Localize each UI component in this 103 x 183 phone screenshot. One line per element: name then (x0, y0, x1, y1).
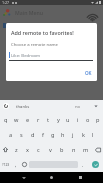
button[interactable]: c (33, 142, 44, 157)
button[interactable]: Emoji (20, 157, 29, 172)
button[interactable]: g (48, 127, 58, 142)
staticText: l (92, 131, 94, 139)
button[interactable]: Shift (0, 142, 11, 157)
button[interactable]: u (63, 112, 73, 127)
staticText: . (82, 161, 84, 168)
button[interactable]: . (78, 157, 87, 172)
button[interactable]: d (27, 127, 38, 142)
staticText: OK (85, 70, 92, 76)
staticText: d (31, 131, 35, 139)
button[interactable]: OK (80, 67, 97, 79)
button[interactable]: Home (46, 172, 57, 183)
button[interactable]: o (83, 112, 93, 127)
staticText: f (42, 131, 44, 139)
staticText: k (82, 131, 85, 139)
button[interactable]: z (11, 142, 22, 157)
staticText: x (26, 146, 29, 154)
button[interactable]: y (53, 112, 63, 127)
button[interactable]: b (56, 142, 68, 157)
button[interactable]: j (68, 127, 78, 142)
staticText: t (47, 116, 50, 124)
button[interactable]: a (5, 127, 16, 142)
staticText: q (4, 116, 8, 124)
staticText: h (61, 131, 65, 139)
button[interactable]: Back (18, 172, 29, 183)
button[interactable]: Recent apps (75, 172, 86, 183)
staticText: r (37, 116, 40, 124)
staticText: ?123 (2, 162, 10, 167)
button[interactable]: h (58, 127, 68, 142)
staticText: , (15, 161, 17, 168)
staticText: Add remote to favorites! (11, 29, 74, 36)
button[interactable]: Google (3, 103, 9, 109)
staticText: o (86, 116, 90, 124)
button[interactable]: Backspace (92, 142, 103, 157)
staticText: p (96, 116, 100, 124)
staticText: c (37, 146, 40, 154)
staticText: n (72, 146, 76, 154)
staticText: g (51, 131, 55, 139)
button[interactable]: p (93, 112, 103, 127)
button[interactable]: t (43, 112, 53, 127)
button[interactable]: q (0, 112, 11, 127)
staticText: w (14, 116, 19, 124)
button[interactable]: l (88, 127, 98, 142)
staticText: y (57, 116, 60, 124)
button[interactable]: r (33, 112, 43, 127)
staticText: z (15, 146, 18, 154)
staticText: 1:27 (2, 0, 10, 5)
staticText: m (83, 146, 89, 154)
button[interactable]: m (80, 142, 92, 157)
button[interactable]: More suggestions (94, 104, 98, 108)
staticText: b (60, 146, 64, 154)
staticText: a (9, 131, 13, 139)
button[interactable]: s (16, 127, 27, 142)
staticText: j (72, 131, 74, 139)
button[interactable]: v (44, 142, 56, 157)
staticText: no (75, 104, 81, 110)
button[interactable]: w (11, 112, 22, 127)
button[interactable]: ?123 (0, 157, 11, 172)
button[interactable]: i (73, 112, 83, 127)
staticText: s (20, 131, 23, 139)
staticText: u (66, 116, 70, 124)
staticText: Like: Bedroom (11, 52, 41, 58)
staticText: Choose a remote name (11, 41, 59, 47)
button[interactable]: e (22, 112, 33, 127)
staticText: v (49, 146, 52, 154)
button[interactable]: x (22, 142, 33, 157)
button[interactable]: n (68, 142, 80, 157)
button[interactable]: f (38, 127, 48, 142)
staticText: i (77, 116, 79, 124)
staticText: e (26, 116, 30, 124)
button[interactable]: Enter (87, 157, 103, 172)
staticText: thanks (16, 104, 30, 110)
button[interactable]: k (78, 127, 88, 142)
staticText: Main Menu (15, 9, 43, 16)
button[interactable]: , (11, 157, 20, 172)
